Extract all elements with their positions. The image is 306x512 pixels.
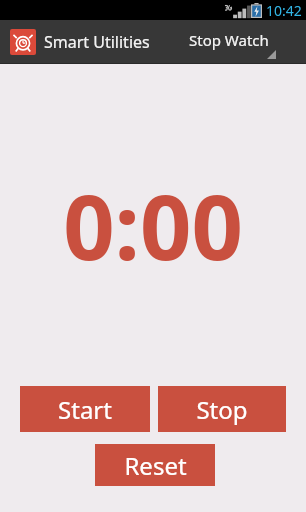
staticText: Stop Watch	[189, 30, 269, 50]
staticText: Start	[58, 393, 112, 426]
button[interactable]: Start	[20, 386, 150, 432]
button[interactable]: Stop Watch	[180, 20, 290, 63]
staticText: Stop	[196, 393, 248, 426]
button[interactable]: Reset	[95, 444, 215, 486]
staticText: Reset	[124, 449, 187, 482]
button[interactable]: Stop	[158, 386, 286, 432]
staticText: 10:42	[266, 1, 302, 20]
staticText: Smart Utilities	[44, 31, 150, 53]
staticText: 0:00	[0, 164, 306, 287]
